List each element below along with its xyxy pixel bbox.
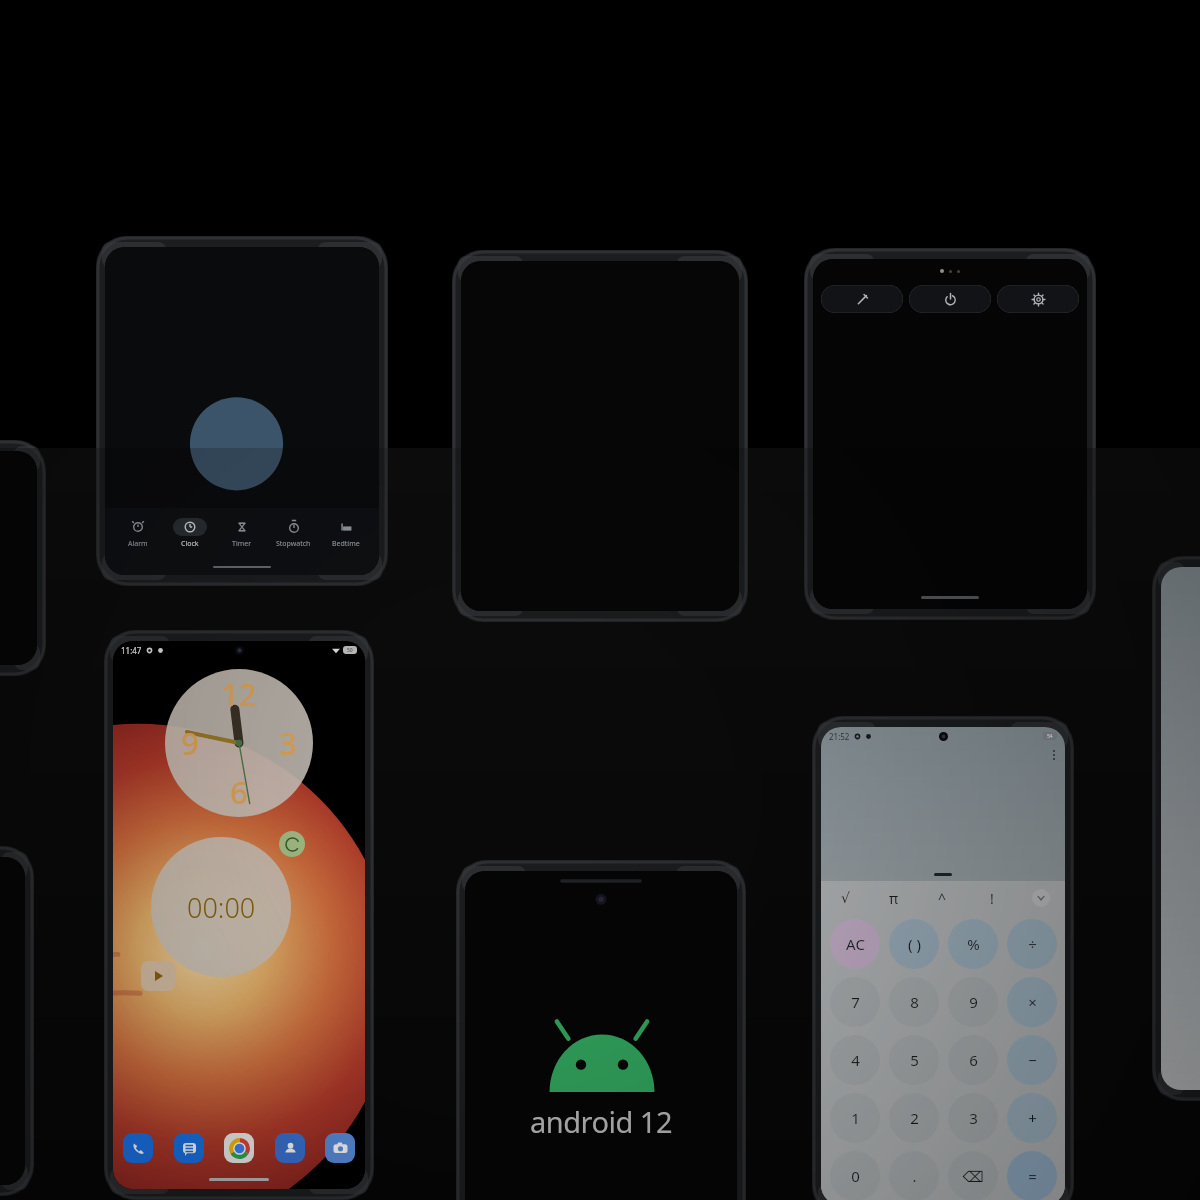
button[interactable]: Timer <box>223 518 261 549</box>
staticText: 00:00 <box>187 889 256 926</box>
staticText: . <box>912 1166 917 1186</box>
staticText: π <box>889 889 899 908</box>
button[interactable]: − <box>1007 1035 1057 1085</box>
staticText: 6 <box>969 1050 978 1070</box>
staticText: ^ <box>938 889 947 908</box>
button[interactable]: Alarm <box>119 518 157 549</box>
button[interactable]: Edit <box>821 285 903 313</box>
staticText: 21:52 <box>829 731 850 742</box>
staticText: 3 <box>969 1108 978 1128</box>
staticText: % <box>967 934 980 954</box>
button[interactable]: 4 <box>830 1035 880 1085</box>
staticText: 2 <box>910 1108 919 1128</box>
staticText: 9 <box>969 992 978 1012</box>
button[interactable]: Stopwatch <box>274 518 313 549</box>
button[interactable]: % <box>948 919 998 969</box>
button[interactable]: 00:00 <box>151 837 291 977</box>
staticText: 11:47 <box>121 645 142 656</box>
button[interactable]: √ <box>821 881 869 915</box>
button[interactable]: Power <box>909 285 991 313</box>
staticText: android 12 <box>530 1102 673 1141</box>
button[interactable]: Clock <box>171 518 209 549</box>
staticText: 3 <box>279 722 297 764</box>
staticText: 50 <box>347 647 353 654</box>
staticText: 8 <box>910 992 919 1012</box>
staticText: − <box>1028 1050 1037 1070</box>
staticText: 0 <box>851 1166 860 1186</box>
staticText: + <box>1028 1108 1037 1128</box>
staticText: = <box>1028 1166 1037 1186</box>
button[interactable]: App <box>275 1133 305 1163</box>
button[interactable]: App <box>123 1133 153 1163</box>
button[interactable]: 9 <box>948 977 998 1027</box>
button[interactable]: ! <box>967 881 1016 915</box>
staticText: Bedtime <box>332 539 360 549</box>
staticText: Alarm <box>128 539 148 549</box>
button[interactable]: Reset stopwatch <box>279 831 305 857</box>
staticText: 9 <box>181 722 199 764</box>
button[interactable]: . <box>889 1151 939 1200</box>
button[interactable]: App <box>325 1133 355 1163</box>
button[interactable]: π <box>869 881 918 915</box>
button[interactable]: ÷ <box>1007 919 1057 969</box>
staticText: ⌫ <box>962 1168 984 1185</box>
staticText: 12 <box>221 673 257 715</box>
button[interactable]: Bedtime <box>327 518 365 549</box>
staticText: ÷ <box>1028 934 1037 954</box>
staticText: Clock <box>181 539 199 549</box>
staticText: ( ) <box>908 934 921 954</box>
button[interactable]: = <box>1007 1151 1057 1200</box>
staticText: Stopwatch <box>276 539 311 549</box>
button[interactable]: ( ) <box>889 919 939 969</box>
button[interactable]: 1 <box>830 1093 880 1143</box>
staticText: AC <box>846 934 865 954</box>
staticText: 54 <box>1047 733 1053 740</box>
button[interactable]: + <box>1007 1093 1057 1143</box>
button[interactable]: 8 <box>889 977 939 1027</box>
staticText: 4 <box>851 1050 860 1070</box>
button[interactable]: ⌫ <box>948 1151 998 1200</box>
staticText: 1 <box>851 1108 860 1128</box>
button[interactable]: 0 <box>830 1151 880 1200</box>
button[interactable]: 6 <box>948 1035 998 1085</box>
staticText: Timer <box>232 539 252 549</box>
button[interactable]: Expand <box>1016 881 1065 915</box>
staticText: 5 <box>910 1050 919 1070</box>
button[interactable]: × <box>1007 977 1057 1027</box>
staticText: ! <box>990 889 994 908</box>
staticText: × <box>1028 992 1037 1012</box>
button[interactable]: App <box>174 1133 204 1163</box>
staticText: 7 <box>851 992 860 1012</box>
button[interactable]: Chrome <box>224 1133 254 1163</box>
button[interactable]: ^ <box>918 881 967 915</box>
button[interactable]: Start stopwatch <box>141 961 175 991</box>
button[interactable]: 2 <box>889 1093 939 1143</box>
button[interactable]: 3 <box>948 1093 998 1143</box>
button[interactable]: AC <box>830 919 880 969</box>
button[interactable]: Settings <box>997 285 1079 313</box>
staticText: 6 <box>230 771 248 813</box>
button[interactable]: 5 <box>889 1035 939 1085</box>
button[interactable]: 7 <box>830 977 880 1027</box>
button[interactable]: 12 <box>165 669 313 817</box>
staticText: √ <box>841 890 850 906</box>
